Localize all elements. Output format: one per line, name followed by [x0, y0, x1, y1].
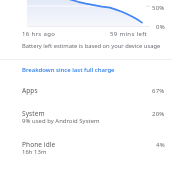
staticText: 20% [152, 110, 165, 118]
button[interactable]: System [0, 103, 172, 129]
staticText: 59 mins left [110, 30, 148, 38]
button[interactable]: Breakdown since last full charge [22, 66, 115, 74]
staticText: 16 hrs ago [22, 30, 56, 38]
staticText: 50% [152, 4, 165, 12]
staticText: System [22, 109, 45, 118]
staticText: 0% [156, 23, 165, 31]
staticText: Phone idle [22, 140, 56, 149]
staticText: Breakdown since last full charge [22, 66, 115, 74]
staticText: 4% [156, 141, 165, 149]
button[interactable]: Apps [0, 80, 172, 100]
staticText: Battery left estimate is based on your d… [22, 42, 161, 50]
staticText: 16h 13m [22, 148, 47, 156]
button[interactable]: Phone idle [0, 134, 172, 160]
staticText: Apps [22, 86, 38, 95]
staticText: 67% [152, 87, 165, 95]
staticText: 9% used by Android System [22, 117, 100, 125]
